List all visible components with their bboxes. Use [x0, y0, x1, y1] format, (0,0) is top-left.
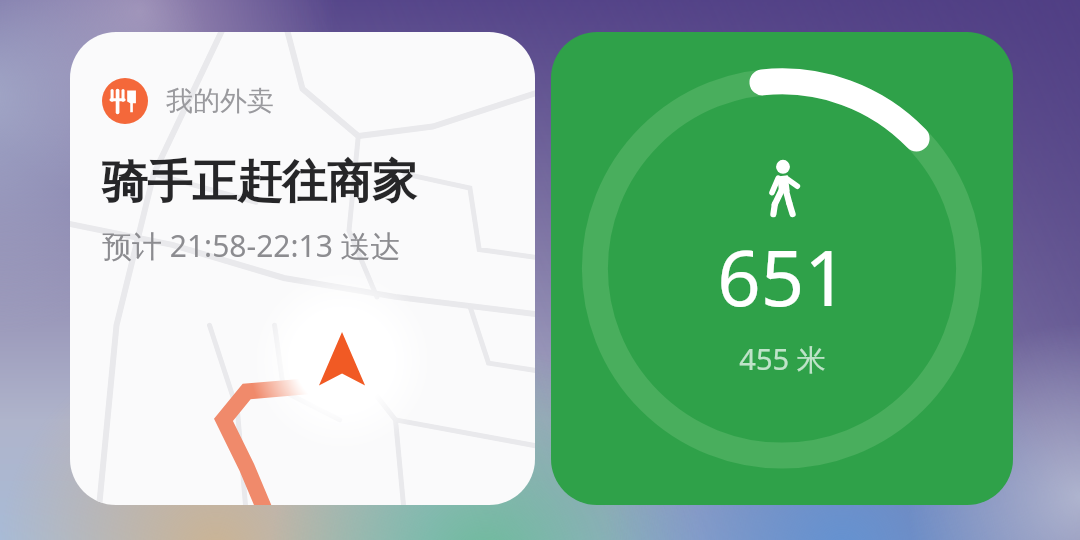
- button[interactable]: 我的外卖: [70, 32, 535, 505]
- button[interactable]: Step counter: 651 steps, 455 meters: [551, 32, 1013, 505]
- staticText: 我的外卖: [166, 84, 274, 118]
- staticText: 455 米: [739, 339, 826, 379]
- staticText: 651: [717, 225, 848, 329]
- staticText: 预计 21:58-22:13 送达: [102, 225, 401, 266]
- staticText: 骑手正赶往商家: [102, 154, 417, 211]
